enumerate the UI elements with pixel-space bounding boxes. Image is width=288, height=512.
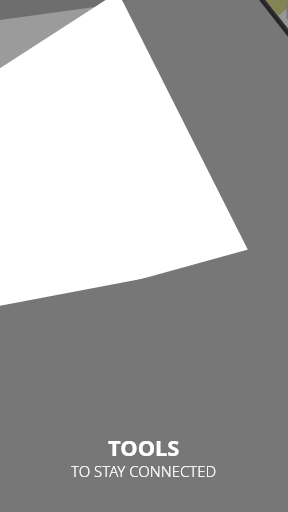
button[interactable]: Tools to stay connected [0, 0, 288, 512]
